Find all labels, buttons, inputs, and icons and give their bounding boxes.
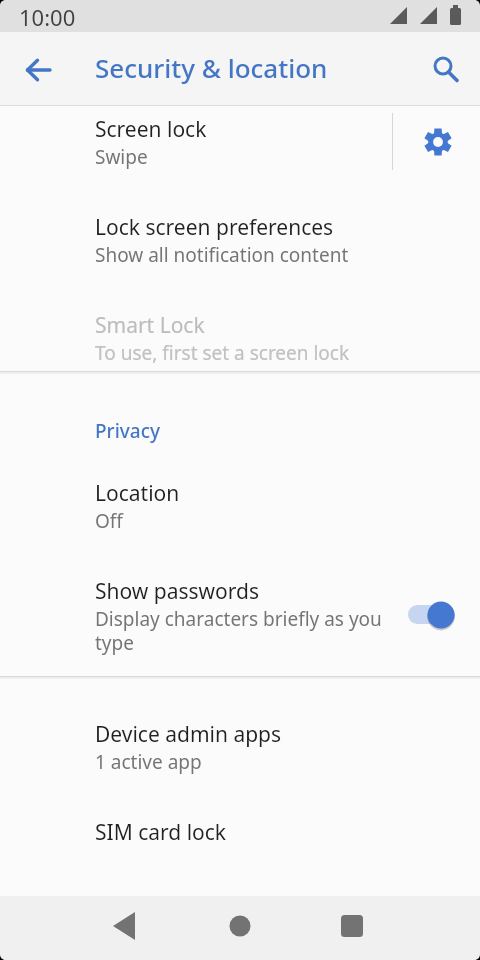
staticText: Off — [95, 508, 385, 534]
staticText: Privacy — [95, 418, 160, 444]
button[interactable]: Screen lock — [0, 106, 480, 204]
button[interactable] — [216, 908, 264, 956]
staticText: Swipe — [95, 144, 385, 170]
staticText: SIM card lock — [95, 818, 227, 847]
button[interactable] — [428, 52, 464, 88]
staticText: Screen lock — [95, 115, 207, 144]
button[interactable]: Smart Lock — [0, 302, 480, 372]
staticText: Security & location — [95, 50, 328, 85]
staticText: Lock screen preferences — [95, 213, 334, 242]
button[interactable]: SIM card lock — [0, 809, 480, 896]
button[interactable] — [400, 592, 464, 640]
button[interactable] — [414, 118, 462, 166]
staticText: Show all notification content — [95, 242, 385, 268]
staticText: 1 active app — [95, 749, 385, 775]
staticText: 10:00 — [19, 2, 76, 32]
button[interactable]: Show passwords — [0, 568, 480, 676]
staticText: Location — [95, 479, 180, 508]
staticText: Display characters briefly as you type — [95, 606, 385, 655]
button[interactable] — [22, 54, 54, 86]
button[interactable] — [328, 908, 376, 956]
staticText: Device admin apps — [95, 720, 282, 749]
staticText: Smart Lock — [95, 311, 205, 340]
staticText: Show passwords — [95, 577, 260, 606]
button[interactable]: Lock screen preferences — [0, 204, 480, 302]
button[interactable]: Device admin apps — [0, 711, 480, 809]
button[interactable]: Location — [0, 470, 480, 568]
button[interactable] — [100, 908, 148, 956]
staticText: To use, first set a screen lock — [95, 340, 385, 366]
